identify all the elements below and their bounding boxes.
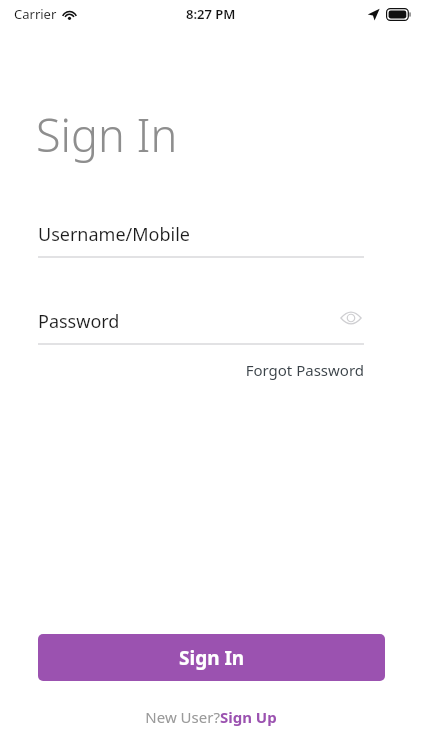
button[interactable]: Show password: [338, 305, 364, 331]
staticText: Carrier: [14, 5, 57, 23]
staticText: Forgot Password: [245, 360, 364, 380]
staticText: Sign In: [179, 645, 245, 671]
staticText: Sign In: [36, 104, 178, 165]
staticText: Username/Mobile: [38, 222, 190, 247]
button[interactable]: Sign In: [38, 634, 385, 681]
staticText: Password: [38, 309, 120, 334]
button[interactable]: Forgot Password: [230, 357, 364, 383]
other: Location: [367, 8, 380, 21]
button[interactable]: Username/Mobile: [38, 214, 364, 258]
staticText: 8:27 PM: [186, 5, 236, 23]
button[interactable]: New User?Sign Up: [145, 704, 277, 730]
button[interactable]: Password: [38, 301, 364, 345]
staticText: New User?Sign Up: [145, 707, 277, 727]
